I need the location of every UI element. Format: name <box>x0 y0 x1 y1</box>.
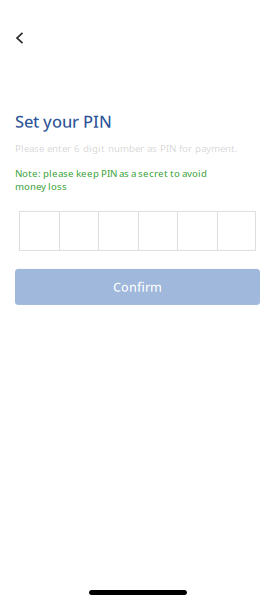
button[interactable]: Back <box>6 24 34 52</box>
staticText: Note: please keep PIN as a secret to avo… <box>15 167 207 180</box>
button[interactable]: Confirm <box>15 269 260 305</box>
staticText: Set your PIN <box>15 110 112 132</box>
staticText: money loss <box>15 180 67 193</box>
staticText: Please enter 6 digit number as PIN for p… <box>15 141 238 155</box>
staticText: Confirm <box>113 278 162 295</box>
